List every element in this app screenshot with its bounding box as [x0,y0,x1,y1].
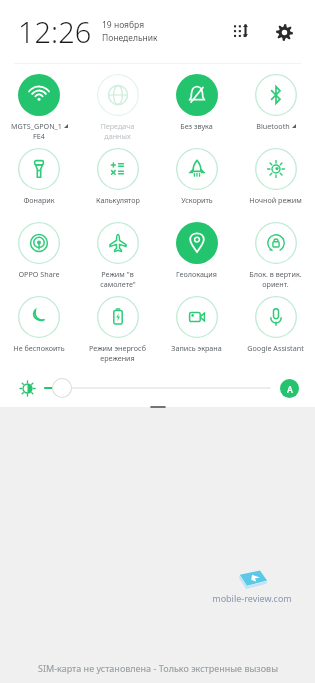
staticText: 19 ноября [102,19,145,31]
button[interactable]: Калькулятор [78,145,157,219]
staticText: Не беспокоить [13,343,65,353]
staticText: MGTS_GPON_1 [11,121,62,131]
button[interactable]: Без звука [157,71,236,145]
button[interactable]: Edit tiles [227,17,257,47]
button[interactable]: Ускорить [157,145,236,219]
button[interactable]: Передача [78,71,157,145]
button[interactable]: Ночной режим [236,145,315,219]
button[interactable]: Режим энергосб [78,293,157,367]
staticText: данных [104,131,131,141]
button[interactable]: Режим "в [78,219,157,293]
button[interactable]: Не беспокоить [0,293,78,367]
staticText: Передача [100,121,135,131]
staticText: A [287,383,293,395]
staticText: Геолокация [176,269,217,279]
staticText: mobile-review.com [212,592,292,604]
button[interactable]: Settings [269,17,299,47]
staticText: OPPO Share [18,269,60,279]
staticText: Понедельник [102,32,158,44]
button[interactable]: MGTS_GPON_1 [0,71,78,145]
staticText: Ночной режим [249,195,302,205]
button[interactable]: A [280,379,299,398]
staticText: Блок. в вертик. [249,269,302,279]
staticText: ережения [100,353,135,363]
button[interactable]: Bluetooth [236,71,315,145]
button[interactable]: Геолокация [157,219,236,293]
button[interactable]: OPPO Share [0,219,78,293]
staticText: 12:26 [18,12,92,51]
staticText: Bluetooth [256,121,290,131]
staticText: Google Assistant [247,343,304,353]
staticText: SIM-карта не установлена - Только экстре… [38,662,278,674]
staticText: Фонарик [23,195,55,205]
button[interactable]: Google Assistant [236,293,315,367]
staticText: Запись экрана [171,343,222,353]
staticText: самолете" [100,279,136,289]
staticText: Ускорить [181,195,213,205]
staticText: ориент. [262,279,289,289]
staticText: FE4 [33,131,45,141]
staticText: Режим энергосб [89,343,146,353]
button[interactable]: Запись экрана [157,293,236,367]
staticText: Без звука [180,121,213,131]
staticText: Калькулятор [96,195,140,205]
button[interactable]: Фонарик [0,145,78,219]
staticText: Режим "в [101,269,134,279]
button[interactable]: Блок. в вертик. [236,219,315,293]
